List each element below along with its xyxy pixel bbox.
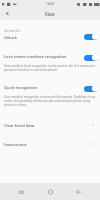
staticText: Clear facial data	[4, 123, 91, 128]
staticText: Unlock	[4, 35, 17, 40]
button[interactable]: Instructions	[0, 139, 100, 149]
staticText: Lock screen interface recognition	[4, 54, 67, 59]
button[interactable]: Toggle	[84, 85, 98, 92]
button[interactable]: Back	[0, 6, 14, 20]
staticText: 16:00	[46, 2, 55, 6]
staticText: Once enabled, facial recognition can be …	[4, 64, 96, 72]
button[interactable]: Clear facial data	[0, 120, 100, 130]
staticText: Once enabled, recognition accuracy will …	[4, 95, 96, 107]
button[interactable]: Recent apps	[9, 183, 34, 200]
staticText: Instructions	[4, 142, 91, 147]
button[interactable]: Lock screen interface recognition	[0, 53, 100, 73]
staticText: Use face for	[4, 29, 20, 33]
button[interactable]: Quick recognition	[0, 84, 100, 108]
staticText: Quick recognition	[4, 85, 38, 90]
button[interactable]: Unlock	[0, 34, 100, 41]
button[interactable]: Toggle	[84, 33, 98, 40]
staticText: Face	[45, 11, 55, 17]
button[interactable]: Toggle	[84, 54, 98, 61]
button[interactable]: Back	[66, 183, 91, 200]
button[interactable]: Home	[38, 183, 63, 200]
